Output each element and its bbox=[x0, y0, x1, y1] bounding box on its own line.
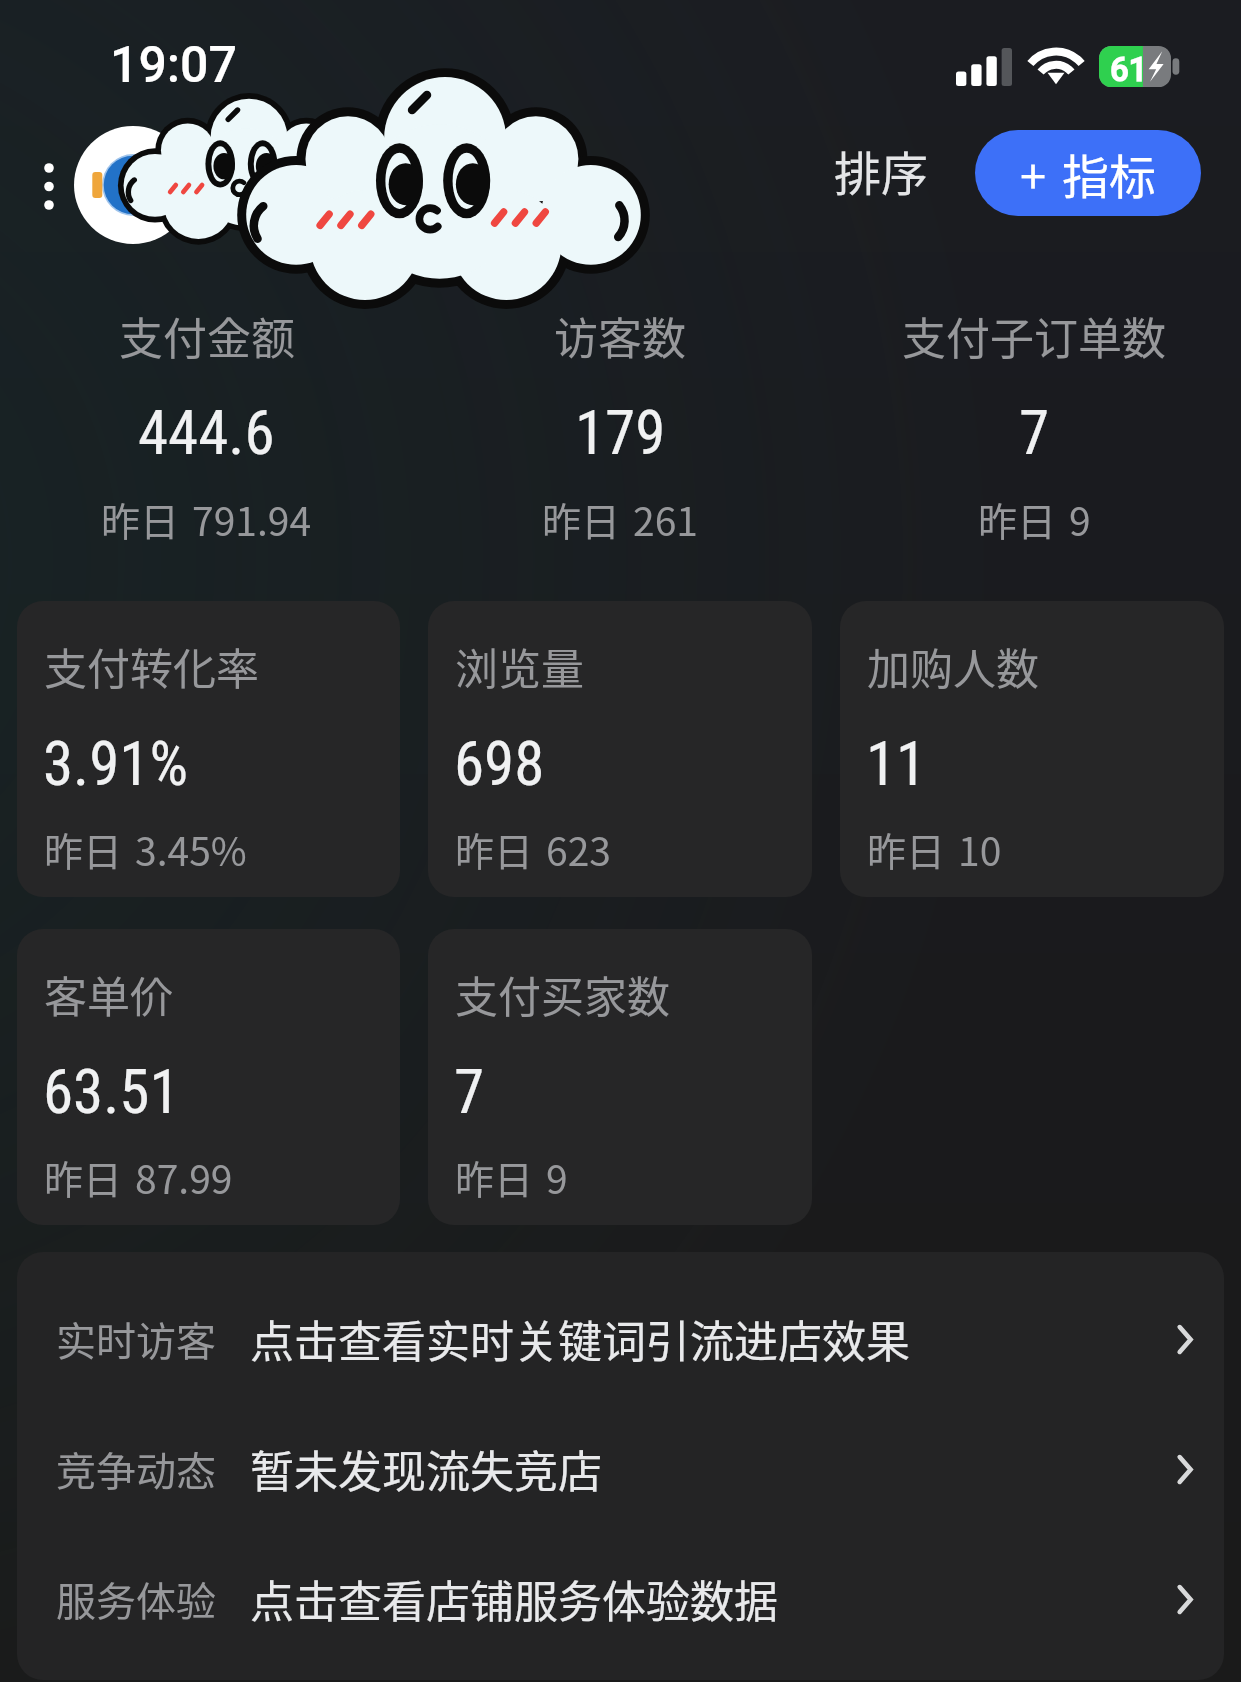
staticText: 昨日 9 bbox=[455, 1149, 568, 1205]
staticText: 指标 bbox=[1062, 139, 1156, 207]
staticText: 实时访客 bbox=[56, 1310, 216, 1368]
staticText: 昨日 261 bbox=[542, 491, 698, 547]
button[interactable]: 支付子订单数 bbox=[827, 290, 1241, 548]
staticText: 7 bbox=[454, 1056, 485, 1127]
button[interactable]: 服务体验 bbox=[17, 1534, 1224, 1664]
button[interactable]: 支付金额 bbox=[0, 290, 413, 548]
staticText: 11 bbox=[866, 728, 927, 799]
staticText: 暂未发现流失竞店 bbox=[250, 1437, 602, 1501]
staticText: 昨日 87.99 bbox=[44, 1149, 233, 1205]
staticText: 客单价 bbox=[44, 963, 173, 1025]
button[interactable]: 客单价 bbox=[17, 929, 400, 1225]
staticText: 支付转化率 bbox=[44, 635, 259, 697]
staticText: 支付子订单数 bbox=[902, 304, 1166, 368]
button[interactable]: 竞争动态 bbox=[17, 1404, 1224, 1534]
staticText: 服务体验 bbox=[56, 1570, 216, 1628]
staticText: 7 bbox=[1019, 397, 1050, 468]
button[interactable]: 支付买家数 bbox=[428, 929, 812, 1225]
staticText: 昨日 9 bbox=[978, 491, 1091, 547]
button[interactable]: 排序 bbox=[818, 125, 943, 215]
button[interactable]: Shop avatar bbox=[74, 126, 192, 244]
button[interactable]: 加购人数 bbox=[840, 601, 1224, 897]
staticText: 63.51 bbox=[43, 1056, 180, 1127]
staticText: 点击查看店铺服务体验数据 bbox=[250, 1567, 778, 1631]
staticText: 昨日 791.94 bbox=[101, 491, 312, 547]
staticText: 昨日 3.45% bbox=[44, 821, 247, 877]
staticText: 昨日 623 bbox=[455, 821, 611, 877]
button[interactable]: + bbox=[975, 130, 1201, 216]
staticText: 698 bbox=[454, 728, 545, 799]
staticText: 支付金额 bbox=[119, 304, 295, 368]
button[interactable]: 浏览量 bbox=[428, 601, 812, 897]
staticText: 竞争动态 bbox=[56, 1440, 216, 1498]
staticText: 支付买家数 bbox=[455, 963, 670, 1025]
button[interactable]: More options bbox=[29, 153, 69, 221]
staticText: 61 bbox=[1110, 50, 1148, 89]
staticText: + bbox=[1020, 139, 1047, 207]
button[interactable]: 实时访客 bbox=[17, 1274, 1224, 1404]
staticText: 访客数 bbox=[554, 304, 686, 368]
staticText: 排序 bbox=[834, 136, 928, 204]
staticText: 179 bbox=[575, 397, 666, 468]
staticText: 444.6 bbox=[138, 397, 275, 468]
staticText: 3.91% bbox=[43, 728, 189, 799]
staticText: 浏览量 bbox=[455, 635, 584, 697]
button[interactable]: 支付转化率 bbox=[17, 601, 400, 897]
staticText: 19:07 bbox=[110, 36, 237, 95]
staticText: 点击查看实时关键词引流进店效果 bbox=[250, 1307, 910, 1371]
staticText: 昨日 10 bbox=[867, 821, 1002, 877]
staticText: 加购人数 bbox=[867, 635, 1039, 697]
button[interactable]: 访客数 bbox=[413, 290, 827, 548]
